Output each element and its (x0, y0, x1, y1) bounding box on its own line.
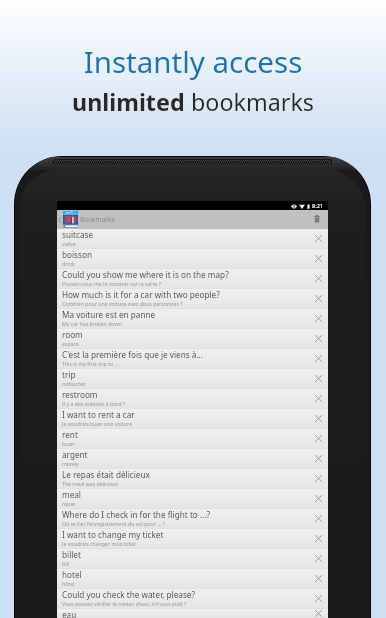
button[interactable]: Remove bookmark (307, 309, 328, 329)
staticText: suitcase (62, 229, 94, 240)
button[interactable]: How much is it for a car with two people… (57, 289, 328, 309)
button[interactable]: Remove bookmark (307, 289, 328, 309)
button[interactable]: Remove bookmark (307, 469, 328, 489)
button[interactable]: argent (57, 449, 328, 469)
staticText: Instantly access (0, 41, 386, 81)
staticText: espace (62, 340, 79, 347)
staticText: Where do I check in for the flight to ..… (62, 509, 211, 520)
staticText: Ma voiture est en panne (62, 309, 156, 320)
staticText: valise (62, 240, 76, 247)
button[interactable]: Where do I check in for the flight to ..… (57, 509, 328, 529)
staticText: Pouvez-vous me le montrer sur la carte ? (62, 280, 161, 287)
button[interactable]: Remove bookmark (307, 249, 328, 269)
button[interactable]: Le repas était délicieux (57, 469, 328, 489)
button[interactable]: Ma voiture est en panne (57, 309, 328, 329)
button[interactable]: restroom (57, 389, 328, 409)
button[interactable]: Remove bookmark (307, 349, 328, 369)
staticText: Où se fait l'enregistrement du vol pour … (62, 520, 165, 527)
staticText: Combien pour une voiture avec deux perso… (62, 300, 183, 307)
staticText: How much is it for a car with two people… (62, 289, 220, 300)
staticText: boisson (62, 249, 92, 260)
staticText: Could you check the water, please? (62, 589, 196, 600)
staticText: Je voudrais louer une voiture (62, 420, 132, 427)
staticText: eau (62, 609, 77, 618)
button[interactable]: hotel (57, 569, 328, 589)
staticText: This is my first trip to ... (62, 360, 119, 367)
staticText: Bookmarks (80, 215, 115, 224)
staticText: hôtel (62, 580, 75, 587)
staticText: bill (62, 560, 70, 567)
staticText: 8:21 (312, 202, 324, 210)
staticText: unlimited (72, 86, 191, 118)
button[interactable]: Remove bookmark (307, 529, 328, 549)
staticText: billet (62, 549, 81, 560)
staticText: argent (62, 449, 88, 460)
button[interactable]: room (57, 329, 328, 349)
staticText: money (62, 460, 79, 467)
staticText: I want to change my ticket (62, 529, 164, 540)
staticText: My car has broken down (62, 320, 122, 327)
button[interactable]: Remove bookmark (307, 369, 328, 389)
button[interactable]: Remove bookmark (307, 609, 328, 618)
button[interactable]: I want to rent a car (57, 409, 328, 429)
button[interactable]: Remove bookmark (307, 409, 328, 429)
staticText: Il y a des toilettes à bord ? (62, 400, 126, 407)
button[interactable]: Remove bookmark (307, 489, 328, 509)
button[interactable]: eau (57, 609, 328, 618)
staticText: The meal was delicious (62, 480, 119, 487)
staticText: Le repas était délicieux (62, 469, 150, 480)
staticText: drink (62, 260, 75, 267)
button[interactable]: Remove bookmark (307, 329, 328, 349)
button[interactable]: Remove bookmark (307, 269, 328, 289)
button[interactable]: Delete all bookmarks (306, 210, 325, 229)
staticText: Could you show me where it is on the map… (62, 269, 229, 280)
staticText: trébucher (62, 380, 86, 387)
staticText: trip (62, 369, 76, 380)
button[interactable]: Remove bookmark (307, 429, 328, 449)
staticText: Je voudrais changer mon billet (62, 540, 136, 547)
staticText: repas (62, 500, 76, 507)
staticText: meal (62, 489, 81, 500)
staticText: I want to rent a car (62, 409, 135, 420)
button[interactable]: Remove bookmark (307, 229, 328, 249)
staticText: louer (62, 440, 75, 447)
staticText: C'est la première fois que je viens à... (62, 349, 204, 360)
button[interactable]: billet (57, 549, 328, 569)
button[interactable]: Could you check the water, please? (57, 589, 328, 609)
button[interactable]: trip (57, 369, 328, 389)
button[interactable]: Remove bookmark (307, 449, 328, 469)
staticText: hotel (62, 569, 82, 580)
staticText: room (62, 329, 83, 340)
staticText: bookmarks (191, 86, 315, 118)
button[interactable]: C'est la première fois que je viens à... (57, 349, 328, 369)
button[interactable]: Remove bookmark (307, 389, 328, 409)
button[interactable]: Remove bookmark (307, 549, 328, 569)
button[interactable]: rent (57, 429, 328, 449)
button[interactable]: I want to change my ticket (57, 529, 328, 549)
staticText: Vous pouvez vérifier le niveau d'eau, s'… (62, 600, 187, 607)
button[interactable]: suitcase (57, 229, 328, 249)
button[interactable]: Could you show me where it is on the map… (57, 269, 328, 289)
button[interactable]: Remove bookmark (307, 589, 328, 609)
button[interactable]: Remove bookmark (307, 569, 328, 589)
button[interactable]: Remove bookmark (307, 509, 328, 529)
staticText: rent (62, 429, 78, 440)
button[interactable]: boisson (57, 249, 328, 269)
button[interactable]: meal (57, 489, 328, 509)
staticText: restroom (62, 389, 98, 400)
